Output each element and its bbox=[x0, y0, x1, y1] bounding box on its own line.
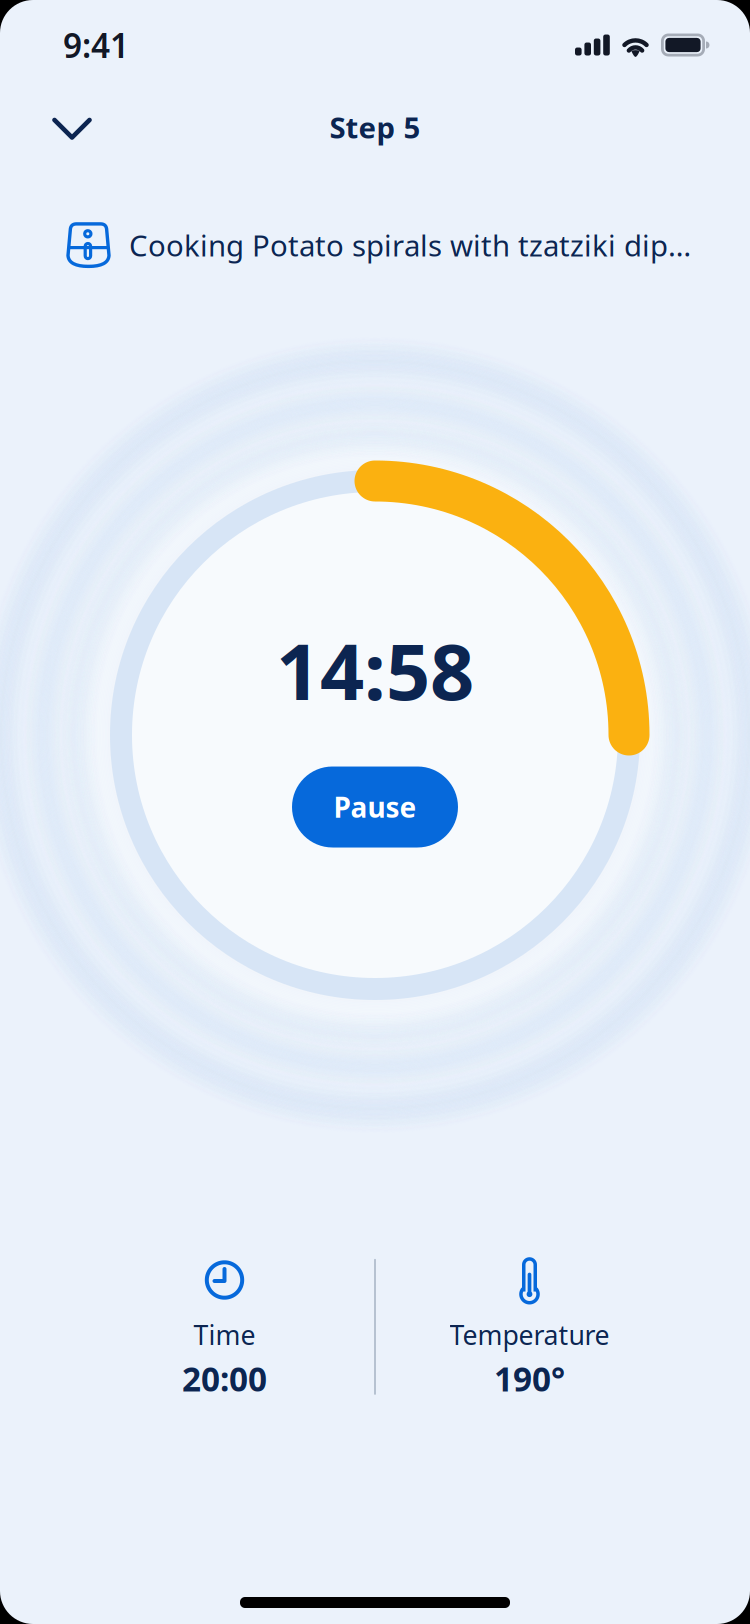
button[interactable]: Collapse bbox=[38, 99, 106, 154]
staticText: Time bbox=[193, 1317, 255, 1352]
staticText: 20:00 bbox=[182, 1356, 267, 1401]
staticText: Pause bbox=[333, 788, 416, 826]
staticText: 9:41 bbox=[63, 23, 129, 67]
button[interactable]: Pause bbox=[292, 766, 458, 847]
staticText: 14:58 bbox=[276, 619, 474, 721]
staticText: 190° bbox=[494, 1356, 565, 1401]
staticText: Step 5 bbox=[329, 107, 420, 146]
staticText: Temperature bbox=[449, 1317, 609, 1352]
staticText: Cooking Potato spirals with tzatziki dip… bbox=[129, 225, 691, 264]
